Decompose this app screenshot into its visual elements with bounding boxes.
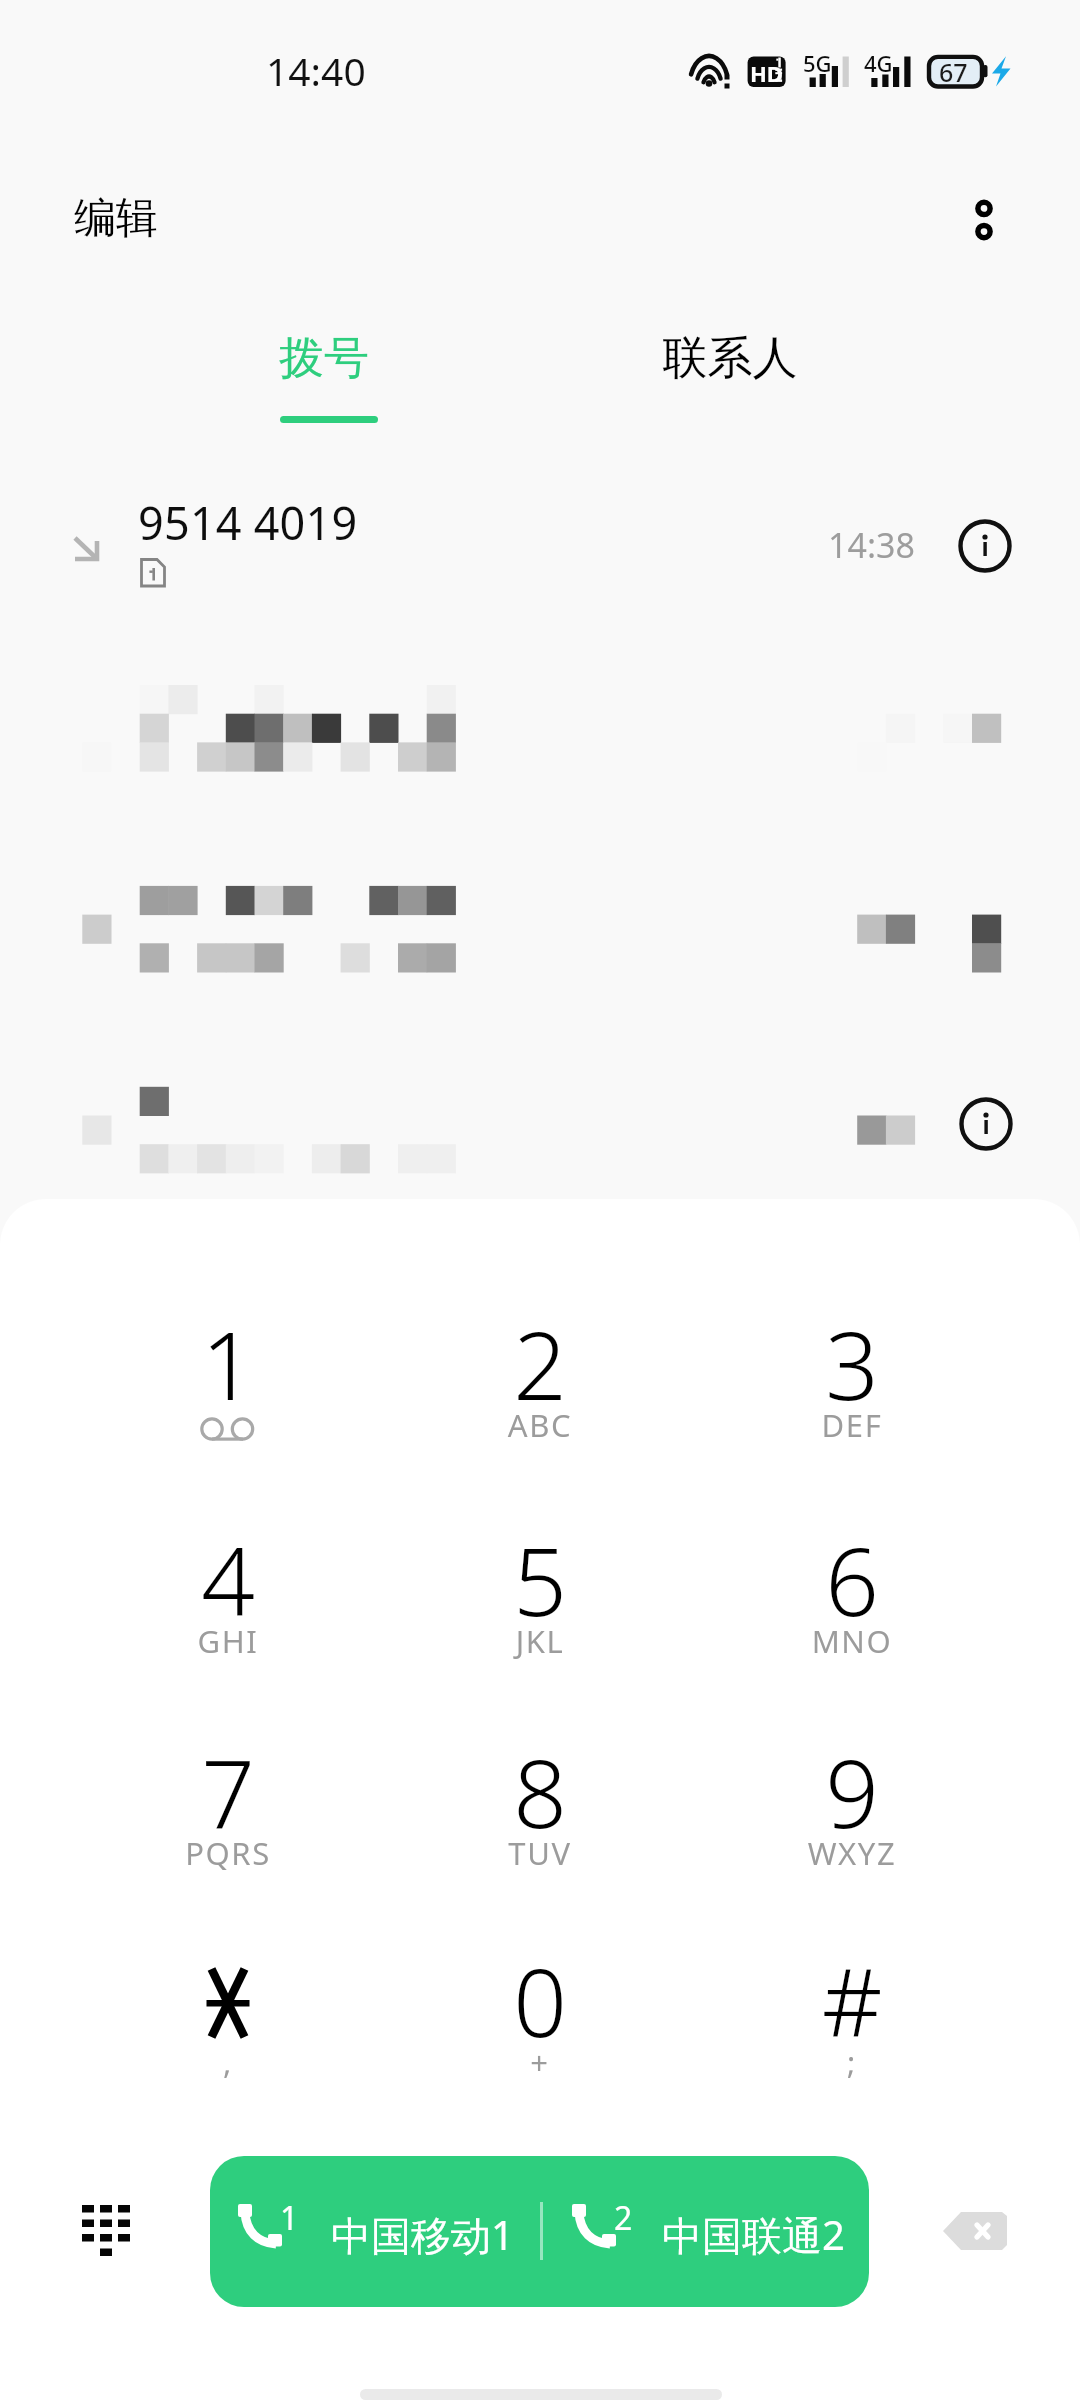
button[interactable]: 拨号: [214, 310, 434, 440]
staticText: 2: [614, 2196, 633, 2240]
staticText: 1: [78, 1300, 378, 1428]
button[interactable]: 4: [78, 1488, 378, 1700]
staticText: 1: [280, 2196, 299, 2240]
staticText: 0: [390, 1937, 690, 2065]
staticText: 9514 4019: [138, 492, 358, 553]
button[interactable]: Keypad: [56, 2198, 158, 2300]
staticText: ;: [702, 2041, 1002, 2083]
staticText: 4G: [864, 48, 893, 78]
button[interactable]: Delete: [925, 2181, 1025, 2281]
button[interactable]: 7: [78, 1700, 378, 1912]
staticText: 14:40: [266, 44, 366, 97]
staticText: ,: [78, 2041, 378, 2083]
staticText: 5: [390, 1516, 690, 1644]
button[interactable]: 2: [390, 1272, 690, 1484]
staticText: PQRS: [78, 1832, 378, 1874]
staticText: 67: [939, 55, 968, 89]
button[interactable]: 3: [702, 1272, 1002, 1484]
staticText: 7: [78, 1728, 378, 1856]
button[interactable]: 1: [78, 1272, 378, 1484]
staticText: 中国联通2: [662, 2207, 845, 2262]
button[interactable]: 9: [702, 1700, 1002, 1912]
staticText: +: [390, 2041, 690, 2083]
staticText: 6: [702, 1516, 1002, 1644]
staticText: 14:38: [828, 522, 915, 568]
button[interactable]: Call details: [959, 1097, 1013, 1151]
staticText: 5G: [803, 48, 832, 78]
staticText: TUV: [390, 1832, 690, 1874]
button[interactable]: Call details: [958, 519, 1012, 573]
button[interactable]: 0: [390, 1909, 690, 2121]
button[interactable]: 联系人: [620, 310, 840, 440]
button[interactable]: Call log entry: [0, 648, 1080, 828]
button[interactable]: 6: [702, 1488, 1002, 1700]
button[interactable]: More options: [939, 175, 1029, 265]
staticText: 4: [78, 1516, 378, 1644]
button[interactable]: 8: [390, 1700, 690, 1912]
button[interactable]: ,: [78, 1909, 378, 2121]
staticText: 8: [390, 1728, 690, 1856]
staticText: JKL: [390, 1620, 690, 1662]
staticText: ABC: [390, 1404, 690, 1446]
staticText: MNO: [702, 1620, 1002, 1662]
staticText: 中国移动1: [331, 2207, 514, 2262]
staticText: WXYZ: [702, 1832, 1002, 1874]
button[interactable]: #: [702, 1909, 1002, 2121]
staticText: 联系人: [620, 330, 840, 387]
button[interactable]: 编辑: [52, 178, 180, 259]
staticText: 2: [390, 1300, 690, 1428]
button[interactable]: Call log entry: [0, 848, 1080, 1028]
staticText: 9: [702, 1728, 1002, 1856]
button[interactable]: 1: [210, 2156, 869, 2307]
button[interactable]: Call log entry: [0, 1045, 1080, 1195]
button[interactable]: 5: [390, 1488, 690, 1700]
staticText: #: [702, 1937, 1002, 2065]
staticText: HD: [750, 58, 783, 88]
button[interactable]: Call 9514 4019 at 14:38: [0, 478, 1080, 610]
staticText: 拨号: [214, 330, 434, 387]
staticText: 编辑: [74, 192, 158, 245]
staticText: GHI: [78, 1620, 378, 1662]
staticText: DEF: [702, 1404, 1002, 1446]
staticText: 3: [702, 1300, 1002, 1428]
